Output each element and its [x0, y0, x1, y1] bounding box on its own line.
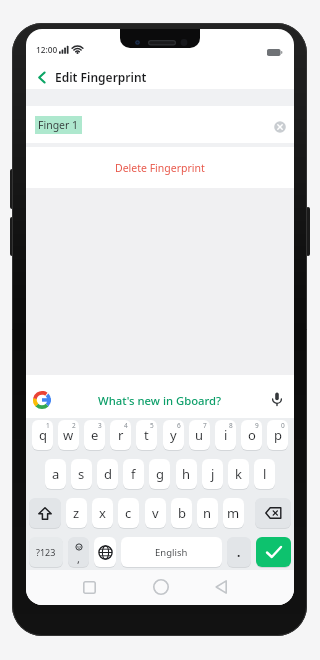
- button[interactable]: l: [254, 459, 275, 489]
- button[interactable]: p: [267, 420, 288, 450]
- staticText: j: [211, 465, 215, 483]
- staticText: y: [170, 426, 177, 444]
- staticText: 4: [124, 421, 128, 430]
- button[interactable]: f: [123, 459, 144, 489]
- staticText: Delete Fingerprint: [115, 161, 205, 175]
- button[interactable]: y: [163, 420, 184, 450]
- staticText: 5: [150, 421, 154, 430]
- button[interactable]: t: [136, 420, 157, 450]
- staticText: 7: [203, 421, 207, 430]
- staticText: e: [91, 426, 99, 444]
- staticText: k: [235, 465, 242, 483]
- staticText: q: [39, 426, 47, 444]
- staticText: g: [156, 465, 164, 483]
- staticText: i: [224, 426, 228, 444]
- button[interactable]: q: [32, 420, 53, 450]
- button[interactable]: v: [145, 498, 166, 528]
- staticText: o: [248, 426, 256, 444]
- staticText: b: [178, 504, 186, 522]
- staticText: 0: [281, 421, 285, 430]
- button[interactable]: ,: [68, 537, 89, 567]
- staticText: m: [227, 504, 240, 522]
- staticText: 9: [255, 421, 259, 430]
- staticText: f: [131, 465, 136, 483]
- staticText: n: [203, 504, 212, 522]
- staticText: 12:00: [36, 44, 58, 55]
- button[interactable]: g: [149, 459, 170, 489]
- button[interactable]: Finger 1: [26, 106, 294, 143]
- button[interactable]: i: [215, 420, 236, 450]
- button[interactable]: z: [66, 498, 87, 528]
- staticText: s: [78, 465, 85, 483]
- staticText: Edit Fingerprint: [55, 69, 147, 85]
- staticText: 2: [72, 421, 76, 430]
- staticText: p: [274, 426, 282, 444]
- button[interactable]: Delete Fingerprint: [26, 147, 294, 188]
- button[interactable]: [256, 537, 291, 567]
- button[interactable]: English: [121, 537, 222, 567]
- button[interactable]: o: [241, 420, 262, 450]
- staticText: w: [63, 426, 74, 444]
- staticText: Finger 1: [38, 118, 79, 132]
- staticText: d: [104, 465, 112, 483]
- button[interactable]: w: [58, 420, 79, 450]
- button[interactable]: [207, 572, 237, 602]
- button[interactable]: u: [189, 420, 210, 450]
- button[interactable]: [94, 537, 116, 567]
- staticText: r: [118, 426, 124, 444]
- staticText: t: [144, 426, 149, 444]
- button[interactable]: r: [110, 420, 131, 450]
- staticText: .: [237, 544, 241, 560]
- button[interactable]: m: [223, 498, 244, 528]
- staticText: ?123: [36, 546, 56, 558]
- staticText: a: [52, 465, 60, 483]
- staticText: 6: [177, 421, 181, 430]
- button[interactable]: [146, 572, 176, 602]
- button[interactable]: s: [71, 459, 92, 489]
- staticText: h: [182, 465, 191, 483]
- button[interactable]: [255, 498, 291, 528]
- button[interactable]: a: [45, 459, 66, 489]
- staticText: c: [125, 504, 132, 522]
- staticText: What's new in Gboard?: [98, 393, 222, 408]
- staticText: l: [263, 465, 267, 483]
- button[interactable]: e: [84, 420, 105, 450]
- button[interactable]: [74, 572, 104, 602]
- button[interactable]: n: [197, 498, 218, 528]
- button[interactable]: k: [228, 459, 249, 489]
- button[interactable]: x: [92, 498, 113, 528]
- staticText: ,: [77, 551, 80, 566]
- button[interactable]: [29, 498, 61, 528]
- button[interactable]: ?123: [29, 537, 63, 567]
- button[interactable]: h: [176, 459, 197, 489]
- button[interactable]: [30, 65, 54, 89]
- staticText: 1: [46, 421, 50, 430]
- button[interactable]: d: [97, 459, 118, 489]
- button[interactable]: b: [171, 498, 192, 528]
- button[interactable]: .: [227, 537, 251, 567]
- staticText: x: [99, 504, 106, 522]
- button[interactable]: j: [202, 459, 223, 489]
- staticText: z: [73, 504, 80, 522]
- staticText: 3: [98, 421, 102, 430]
- staticText: u: [195, 426, 204, 444]
- button[interactable]: What's new in Gboard?: [26, 393, 294, 408]
- staticText: v: [152, 504, 159, 522]
- staticText: English: [155, 546, 188, 559]
- staticText: 8: [229, 421, 233, 430]
- button[interactable]: c: [118, 498, 139, 528]
